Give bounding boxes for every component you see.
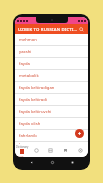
button[interactable]: fahrlanib [15, 130, 88, 142]
staticText: baxor [19, 142, 31, 144]
staticText: fayda [19, 61, 30, 67]
staticText: fayda keltiradi [19, 97, 47, 103]
button[interactable]: baxor [15, 142, 88, 144]
button[interactable]: fayda keltiradigan [15, 82, 88, 94]
button[interactable]: Search [77, 25, 85, 33]
staticText: fayda keltiradigan [19, 85, 55, 91]
button[interactable]: Dictionary [15, 144, 29, 157]
button[interactable]: Grid [43, 144, 58, 157]
button[interactable]: fayda [15, 58, 88, 70]
staticText: Dictionary [16, 145, 29, 149]
staticText: fayda keltiruvchi [19, 109, 52, 115]
staticText: yaxshi [19, 49, 32, 55]
staticText: fayda olish [19, 121, 41, 127]
button[interactable]: yaxshi [15, 46, 88, 58]
staticText: fahrlanib [19, 133, 37, 139]
button[interactable]: Favourites [29, 144, 43, 157]
button[interactable]: Bookmark [58, 144, 73, 157]
button[interactable]: Settings [73, 144, 88, 157]
button[interactable]: metabolik [15, 70, 88, 82]
button[interactable]: Add word [75, 129, 84, 138]
button[interactable]: mehmon [15, 34, 88, 46]
button[interactable]: fayda olish [15, 118, 88, 130]
staticText: metabolik [19, 73, 39, 79]
staticText: mehmon [19, 37, 37, 43]
staticText: UZB TO RUSSIAN [15, 154, 29, 157]
button[interactable]: fayda keltiruvchi [15, 106, 88, 118]
staticText: UZBEK TO RUSSIAN DICTIO… [18, 26, 77, 32]
button[interactable]: fayda keltiradi [15, 94, 88, 106]
button[interactable]: Home [48, 158, 56, 166]
button[interactable]: Back [27, 158, 35, 166]
button[interactable]: Recent apps [68, 158, 76, 166]
